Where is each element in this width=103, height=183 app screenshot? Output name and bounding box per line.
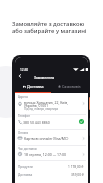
staticText: Час доставки (18, 147, 37, 151)
staticText: 1 178,00 ₴ (68, 165, 84, 169)
staticText: Оплата (18, 131, 29, 135)
button[interactable] (17, 95, 87, 113)
button[interactable]: Back (16, 72, 24, 80)
button[interactable] (17, 114, 87, 128)
staticText: 359,00 ₴ (71, 173, 84, 177)
staticText: Самовивіз (62, 84, 81, 89)
staticText: Продукти (18, 165, 33, 169)
staticText: Карткою онлайн (Visa/MC) (24, 136, 69, 141)
staticText: вулиця Хрещатик, 22, Київ, Україна, 0100… (24, 100, 69, 108)
button[interactable] (17, 146, 87, 160)
button[interactable]: Самовивіз (51, 82, 88, 93)
staticText: Доставка (18, 173, 33, 177)
staticText: Замовлення (34, 75, 55, 79)
staticText: 380 50 443 8860 (23, 120, 50, 125)
staticText: 18 серпня, 12:00 — 17:00 (24, 152, 67, 157)
staticText: Під'їзд, поверх, квартира (24, 107, 59, 111)
staticText: Телефон (18, 114, 30, 118)
button[interactable]: Доставка (15, 82, 51, 93)
button[interactable] (17, 130, 87, 144)
staticText: Замовляйте з доставкою або забирайте у м… (12, 20, 87, 35)
staticText: Адреса (18, 95, 28, 99)
staticText: 12:30 (20, 68, 29, 72)
staticText: Доставка (27, 84, 44, 89)
